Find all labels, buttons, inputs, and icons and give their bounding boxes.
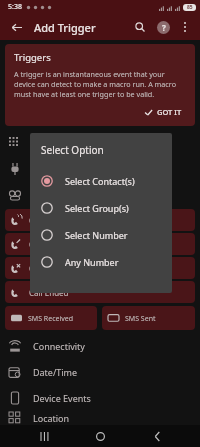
staticText: GOT IT bbox=[157, 107, 182, 117]
staticText: Triggers bbox=[14, 51, 51, 64]
button[interactable]: Applications bbox=[0, 130, 200, 156]
button[interactable]: Back bbox=[144, 425, 170, 447]
button[interactable]: SMS Received bbox=[5, 306, 97, 330]
staticText: Add Trigger bbox=[34, 20, 96, 35]
staticText: Device Events bbox=[33, 392, 91, 404]
button[interactable]: Call Active bbox=[5, 209, 195, 231]
staticText: Select Option bbox=[41, 143, 104, 157]
button[interactable]: Home bbox=[87, 425, 113, 447]
staticText: Connectivity bbox=[33, 340, 85, 352]
staticText: Call Ended bbox=[29, 287, 69, 298]
button[interactable]: SMS Sent bbox=[102, 306, 195, 330]
staticText: 85 bbox=[187, 4, 193, 11]
button[interactable]: Call Ended bbox=[5, 281, 195, 303]
staticText: Select Number bbox=[65, 229, 128, 241]
button[interactable]: Select Number bbox=[41, 221, 161, 248]
staticText: Call Answered bbox=[29, 239, 83, 250]
staticText: SMS Sent bbox=[125, 314, 156, 324]
staticText: Call Missed bbox=[29, 263, 72, 274]
staticText: Applications bbox=[33, 137, 85, 149]
staticText: Date/Time bbox=[33, 366, 78, 378]
button[interactable]: Select Contact(s) bbox=[41, 167, 161, 194]
button[interactable]: Connectivity bbox=[0, 333, 200, 359]
button[interactable]: Battery/Power bbox=[0, 156, 200, 182]
button[interactable]: Call/SMS bbox=[0, 182, 200, 208]
staticText: 5:38 bbox=[8, 2, 22, 12]
button[interactable]: GOT IT bbox=[140, 105, 186, 119]
staticText: ? bbox=[162, 22, 166, 33]
staticText: Call Active bbox=[29, 215, 68, 226]
button[interactable]: More options bbox=[176, 18, 194, 36]
button[interactable]: Call Missed bbox=[5, 257, 195, 279]
button[interactable]: Location bbox=[0, 411, 200, 425]
staticText: SMS Received bbox=[28, 314, 74, 324]
button[interactable]: Triggers bbox=[5, 44, 195, 126]
button[interactable]: Any Number bbox=[41, 248, 161, 275]
button[interactable]: Help bbox=[153, 17, 173, 37]
button[interactable]: Back bbox=[6, 17, 26, 37]
button[interactable]: Call Answered bbox=[5, 233, 195, 255]
staticText: Select Group(s) bbox=[65, 202, 129, 214]
staticText: Select Contact(s) bbox=[65, 175, 135, 187]
staticText: Any Number bbox=[65, 256, 119, 268]
staticText: A trigger is an instantaneous event that… bbox=[14, 69, 186, 99]
button[interactable]: Recents bbox=[31, 425, 57, 447]
button[interactable]: Search bbox=[130, 17, 150, 37]
staticText: Location bbox=[33, 412, 70, 424]
button[interactable]: Device Events bbox=[0, 385, 200, 411]
button[interactable]: Select Group(s) bbox=[41, 194, 161, 221]
button[interactable]: Date/Time bbox=[0, 359, 200, 385]
